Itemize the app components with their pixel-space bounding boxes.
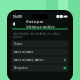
staticText: Meus contatos [14,50,33,54]
button[interactable]: Ninguém [11,64,68,71]
button[interactable]: Todos [11,40,68,47]
button[interactable]: Meus contatos, exceto… [11,56,68,63]
button[interactable]: Meus contatos [11,48,68,55]
staticText: Todos [14,42,22,46]
button[interactable]: Voltar [10,20,17,27]
staticText: Quem pode ver quando eu estou online [12,32,60,39]
staticText: Visto por último e online [25,19,54,29]
staticText: Ninguém [14,66,27,70]
staticText: Meus contatos, exceto… [14,58,45,62]
staticText: 16:09 [12,14,21,19]
